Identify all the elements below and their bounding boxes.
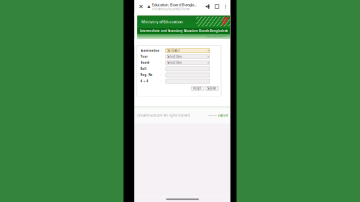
button[interactable]: More options [223, 3, 228, 9]
staticText: ▾ [207, 61, 208, 64]
button[interactable]: Submit [205, 86, 218, 90]
staticText: Submit [207, 87, 216, 90]
button[interactable]: Select One [166, 61, 210, 65]
staticText: exceed [217, 114, 228, 117]
staticText: Reg. No [140, 73, 152, 77]
staticText: : [161, 79, 162, 83]
staticText: ▾ [207, 49, 208, 52]
staticText: : [161, 67, 162, 71]
button[interactable]: Select One [166, 55, 210, 59]
staticText: eboardresults.com/v2/home [152, 7, 190, 11]
button[interactable]: Share [204, 3, 210, 9]
staticText: Board [140, 61, 149, 64]
button[interactable]: Reset [191, 86, 203, 90]
staticText: Education Board Bangla… [152, 2, 197, 7]
staticText: Year [140, 55, 147, 58]
staticText: SSC/Dakhil [167, 49, 180, 52]
staticText: Roll [140, 67, 146, 71]
staticText: Reset [193, 87, 201, 90]
staticText: Select One [167, 61, 182, 64]
staticText: Powered by [208, 115, 217, 116]
button[interactable] [166, 67, 210, 71]
staticText: Intermediate and Secondary Education Boa… [140, 29, 228, 33]
staticText: eboardresults.com All rights reserved [137, 114, 190, 117]
button[interactable]: SSC/Dakhil [166, 48, 210, 53]
button[interactable] [166, 79, 210, 83]
staticText: 4 + 4 [140, 79, 148, 83]
staticText: : [161, 73, 162, 77]
staticText: Select One [167, 55, 182, 58]
staticText: Ministry of Education [141, 19, 183, 24]
button[interactable]: Close [137, 3, 144, 10]
staticText: Official Result of Education Board [206, 36, 227, 38]
staticText: ▾ [207, 55, 208, 58]
button[interactable]: Downloads [214, 3, 220, 9]
staticText: Examination [140, 49, 159, 52]
